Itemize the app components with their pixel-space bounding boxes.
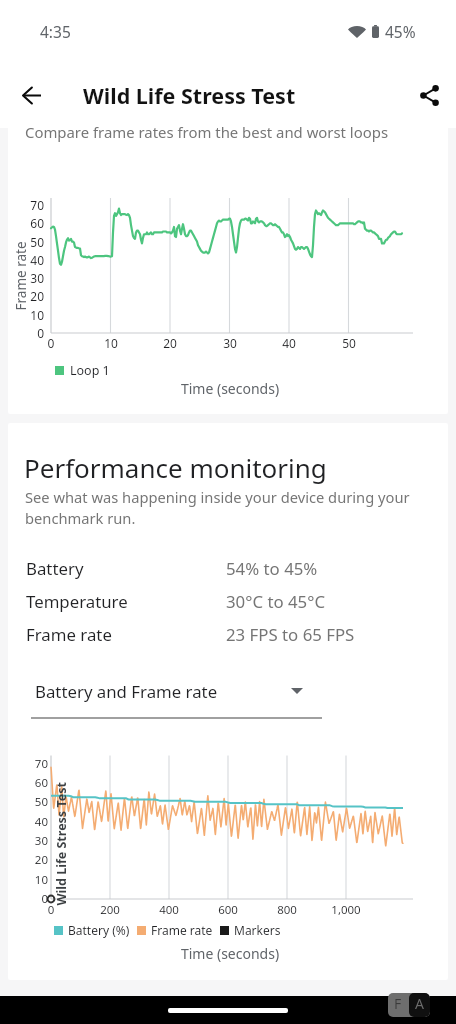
staticText: Wild Life Stress Test	[52, 781, 69, 905]
staticText: Time (seconds)	[10, 379, 448, 398]
staticText: 54% to 45%	[226, 557, 318, 580]
staticText: 600	[210, 902, 246, 918]
staticText: Battery and Frame rate	[35, 680, 218, 703]
staticText: 50	[12, 234, 44, 250]
staticText: Loop 1	[70, 362, 110, 379]
staticText: Frame rate	[11, 241, 29, 310]
button[interactable]: Frame rate	[8, 623, 448, 653]
staticText: Time (seconds)	[10, 944, 448, 963]
staticText: Temperature	[26, 590, 128, 613]
staticText: 60	[20, 775, 48, 791]
staticText: 200	[92, 902, 128, 918]
staticText: 0	[20, 891, 48, 907]
staticText: 10	[20, 872, 48, 888]
button[interactable]: Battery and Frame rate	[22, 668, 327, 714]
staticText: 60	[12, 215, 44, 231]
staticText: 23 FPS to 65 FPS	[226, 623, 355, 646]
staticText: A	[415, 994, 424, 1013]
staticText: 10	[96, 335, 126, 351]
staticText: 1,000	[328, 902, 364, 918]
staticText: 40	[12, 252, 44, 268]
staticText: F	[394, 994, 402, 1013]
staticText: Wild Life Stress Test	[83, 81, 296, 110]
staticText: 20	[20, 852, 48, 868]
staticText: 50	[20, 794, 48, 810]
staticText: See what was happening inside your devic…	[25, 487, 410, 529]
staticText: 0	[36, 335, 66, 351]
staticText: Battery	[26, 557, 84, 580]
staticText: 4:35	[40, 21, 71, 42]
staticText: 0	[33, 902, 69, 918]
staticText: 70	[20, 756, 48, 772]
staticText: 10	[12, 307, 44, 323]
staticText: 40	[274, 335, 304, 351]
staticText: Compare frame rates from the best and wo…	[25, 122, 389, 142]
button[interactable]: Share	[409, 75, 449, 115]
staticText: 20	[12, 288, 44, 304]
staticText: 40	[20, 814, 48, 830]
staticText: 800	[269, 902, 305, 918]
staticText: Markers	[234, 922, 281, 938]
staticText: 45%	[385, 21, 416, 42]
staticText: Frame rate	[26, 623, 112, 646]
staticText: Battery (%)	[68, 922, 130, 938]
button[interactable]: Back	[11, 75, 51, 115]
staticText: 400	[151, 902, 187, 918]
staticText: Frame rate	[151, 922, 213, 938]
button[interactable]: Battery	[8, 557, 448, 587]
button[interactable]: Temperature	[8, 590, 448, 620]
staticText: 30	[215, 335, 245, 351]
staticText: 30	[12, 270, 44, 286]
staticText: 30°C to 45°C	[226, 590, 326, 613]
staticText: Performance monitoring	[24, 450, 327, 485]
staticText: 70	[12, 197, 44, 213]
staticText: 0	[12, 325, 44, 341]
staticText: 20	[155, 335, 185, 351]
staticText: 50	[334, 335, 364, 351]
staticText: 30	[20, 833, 48, 849]
